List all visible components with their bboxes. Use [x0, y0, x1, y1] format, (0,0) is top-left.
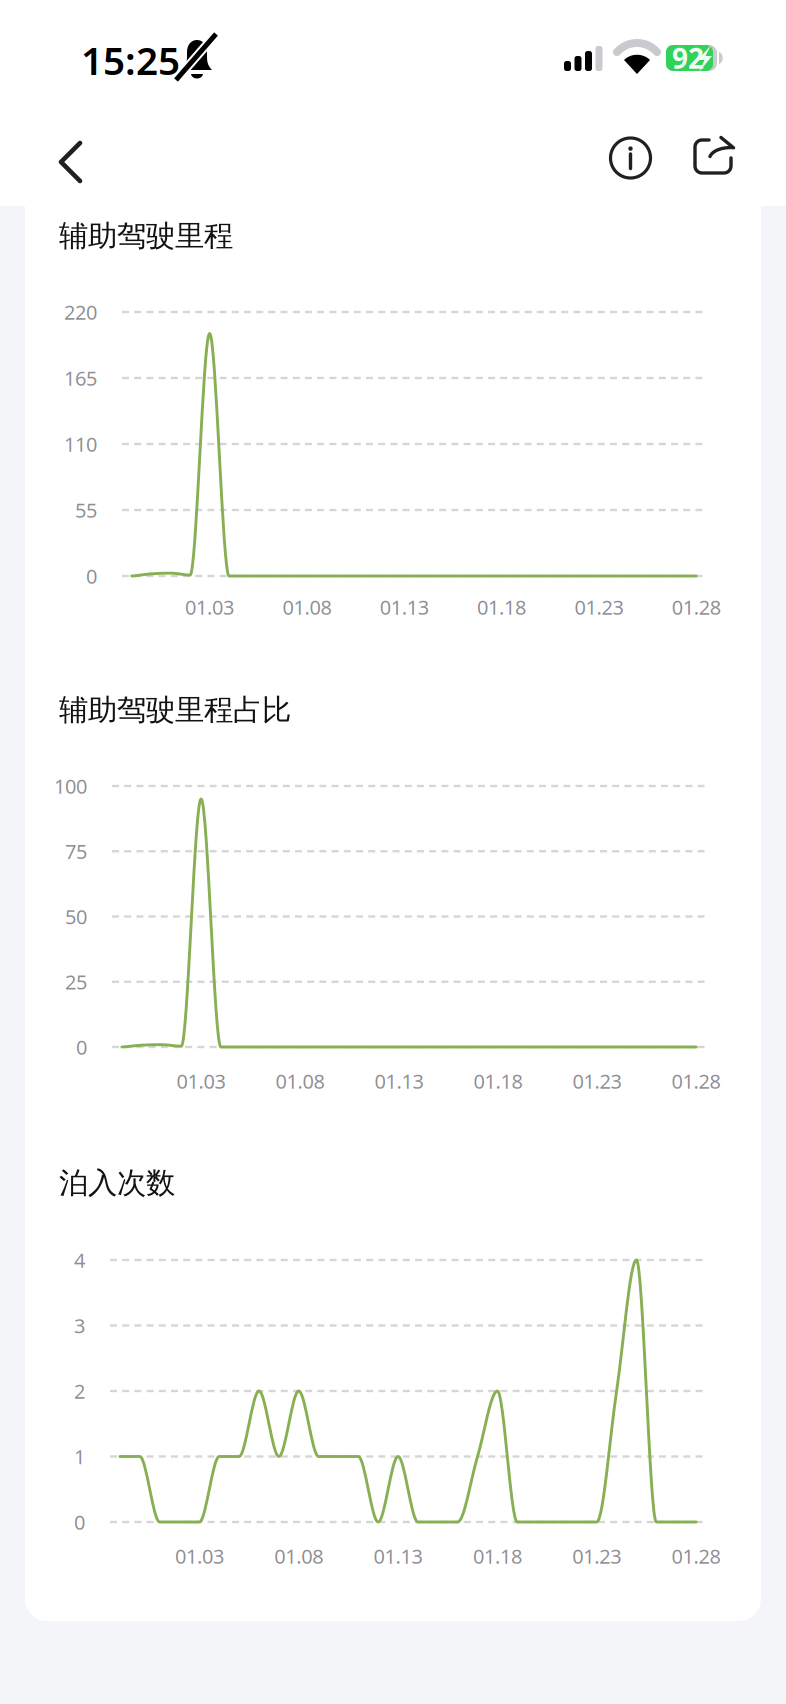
staticText: 辅助驾驶里程 — [59, 218, 233, 254]
button[interactable]: Information — [0, 0, 786, 210]
staticText: 01.08 — [282, 594, 331, 620]
staticText: 01.18 — [473, 1543, 522, 1569]
staticText: 01.18 — [477, 594, 526, 620]
staticText: 01.28 — [672, 594, 721, 620]
staticText: 01.18 — [474, 1068, 523, 1094]
staticText: 25 — [65, 968, 87, 995]
staticText: 01.03 — [177, 1068, 226, 1094]
staticText: 110 — [64, 431, 97, 457]
button[interactable]: Share — [0, 0, 786, 210]
staticText: 15:25 — [81, 34, 180, 86]
staticText: 01.23 — [573, 1068, 622, 1094]
staticText: 2 — [74, 1378, 85, 1404]
staticText: 0 — [74, 1509, 85, 1535]
staticText: 220 — [64, 299, 97, 325]
staticText: 75 — [65, 838, 87, 865]
staticText: 4 — [74, 1247, 85, 1273]
staticText: 01.13 — [375, 1068, 424, 1094]
staticText: 0 — [86, 563, 97, 589]
staticText: 01.03 — [185, 594, 234, 620]
staticText: 泊入次数 — [59, 1165, 175, 1201]
staticText: 01.28 — [672, 1543, 721, 1569]
staticText: 100 — [54, 773, 87, 799]
staticText: 01.13 — [374, 1543, 423, 1569]
staticText: 1 — [74, 1443, 85, 1470]
staticText: 01.13 — [380, 594, 429, 620]
staticText: 01.08 — [274, 1543, 323, 1569]
staticText: 01.23 — [574, 594, 623, 620]
button[interactable]: Back — [0, 0, 786, 210]
staticText: 55 — [75, 497, 97, 523]
staticText: 01.03 — [175, 1543, 224, 1569]
staticText: 辅助驾驶里程占比 — [59, 692, 291, 728]
staticText: 92 — [672, 39, 704, 77]
staticText: 01.28 — [672, 1068, 721, 1094]
staticText: 3 — [74, 1312, 85, 1339]
staticText: 165 — [64, 365, 97, 391]
staticText: 50 — [65, 903, 87, 930]
staticText: 01.23 — [572, 1543, 621, 1569]
staticText: 0 — [76, 1034, 87, 1060]
staticText: 01.08 — [276, 1068, 325, 1094]
